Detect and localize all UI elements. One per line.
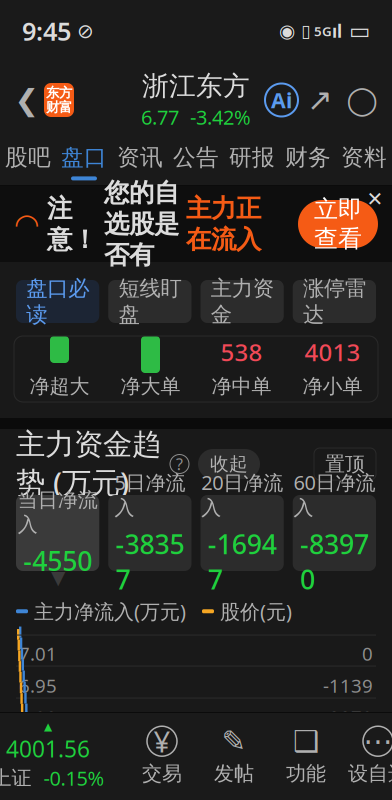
button[interactable]: 涨停雷达 — [293, 280, 376, 323]
staticText: 6.90 — [19, 705, 57, 730]
staticText: 净大单 — [120, 374, 180, 399]
staticText: ▼ — [51, 567, 65, 588]
staticText: -83970 — [300, 526, 369, 597]
staticText: -4550 — [23, 543, 92, 578]
button[interactable]: Back — [10, 76, 44, 124]
staticText: 5日净流入 — [114, 469, 185, 520]
staticText: 交易 — [142, 761, 182, 786]
staticText: ◠ — [14, 207, 40, 241]
staticText: 股价(元) — [220, 598, 292, 625]
staticText: -3418 — [323, 737, 373, 762]
staticText: Ai — [271, 86, 292, 114]
staticText: -16947 — [208, 526, 277, 597]
staticText: 注意！ — [47, 193, 97, 255]
staticText: -38357 — [115, 526, 184, 597]
button[interactable]: 主力资金 — [200, 280, 284, 323]
staticText: 净超大 — [29, 374, 89, 399]
button[interactable]: 置顶 — [314, 448, 376, 480]
button[interactable]: 5日净流入 — [108, 495, 191, 571]
staticText: 0 — [362, 641, 373, 666]
staticText: 立即查看 — [314, 194, 362, 253]
staticText: ? — [176, 453, 183, 475]
staticText: ¥ — [153, 722, 170, 761]
button[interactable]: 股吧 — [0, 138, 56, 186]
staticText: -2279 — [323, 705, 373, 730]
staticText: 主力资金趋势 (万元) — [16, 426, 161, 501]
staticText: 公告 — [173, 144, 219, 171]
staticText: 60日净流入 — [293, 469, 375, 520]
staticText: 当日净流入 — [18, 488, 98, 537]
staticText: ▭ — [342, 18, 370, 44]
button[interactable]: Help — [170, 454, 189, 473]
staticText: ▯ — [295, 21, 311, 41]
staticText: -1139 — [323, 673, 373, 698]
staticText: 浙江东方 — [142, 70, 250, 103]
button[interactable]: 盘口必读 — [16, 280, 99, 323]
button[interactable]: ✎ — [198, 720, 270, 792]
button[interactable]: 60日净流入 — [293, 495, 376, 571]
button[interactable]: ❑ — [270, 720, 342, 792]
staticText: 4013 — [304, 336, 360, 368]
staticText: 上证 — [0, 766, 31, 790]
button[interactable]: 公告 — [168, 138, 224, 186]
staticText: ❑ — [293, 725, 319, 758]
staticText: 538 — [220, 336, 262, 368]
button[interactable]: East Money — [44, 83, 74, 117]
staticText: 资讯 — [117, 144, 163, 171]
staticText: 5G — [311, 22, 332, 40]
staticText: 资料 — [341, 144, 387, 171]
staticText: ⊘ — [71, 20, 94, 42]
staticText: 6.77 — [141, 104, 179, 130]
staticText: ❮ — [14, 83, 39, 117]
button[interactable]: 资讯 — [112, 138, 168, 186]
button[interactable]: 收起 — [198, 449, 260, 479]
button[interactable]: AI assistant — [265, 83, 298, 116]
staticText: 20日净流入 — [201, 469, 283, 520]
staticText: 东方 — [46, 85, 72, 101]
staticText: 主力净流入(万元) — [34, 598, 186, 625]
button[interactable]: Close ad — [362, 186, 388, 212]
staticText: -3.42% — [190, 104, 251, 130]
staticText: 6.95 — [19, 673, 57, 698]
staticText: 主力正在流入 — [186, 193, 261, 255]
staticText: 财富 — [46, 99, 72, 115]
staticText: 7.01 — [19, 641, 57, 666]
staticText: 功能 — [286, 761, 326, 786]
staticText: 盘口必读 — [26, 275, 89, 328]
staticText: ▲ — [44, 721, 52, 733]
staticText: 净小单 — [302, 374, 362, 399]
staticText: -4558 — [323, 769, 373, 794]
button[interactable]: ⋯ — [342, 720, 392, 792]
staticText: 6.79 — [19, 769, 57, 794]
button[interactable]: Share — [298, 78, 342, 122]
staticText: 研报 — [229, 144, 275, 171]
staticText: 盘口 — [61, 144, 107, 171]
staticText: 置顶 — [325, 452, 365, 476]
button[interactable]: 立即查看 — [298, 200, 378, 248]
button[interactable]: 研报 — [224, 138, 280, 186]
button[interactable]: ¥ — [126, 720, 198, 792]
staticText: ✎ — [221, 725, 246, 758]
staticText: 9:45 — [22, 14, 71, 48]
button[interactable]: 20日净流入 — [200, 495, 284, 571]
staticText: ıl — [332, 19, 342, 42]
staticText: ✕ — [366, 188, 383, 210]
staticText: 4001.56 — [6, 734, 90, 764]
button[interactable]: 资料 — [336, 138, 392, 186]
staticText: 净中单 — [211, 374, 271, 399]
button[interactable]: 当日净流入 — [16, 495, 99, 571]
staticText: ↗ — [307, 83, 333, 117]
staticText: 主力资金 — [211, 275, 274, 328]
staticText: 设自选 — [348, 761, 392, 786]
staticText: 涨停雷达 — [303, 275, 366, 328]
staticText: ⋯ — [363, 725, 392, 758]
button[interactable]: Search — [342, 78, 382, 122]
staticText: 发帖 — [214, 761, 254, 786]
staticText: 收起 — [210, 452, 248, 475]
staticText: ◯ — [346, 84, 377, 116]
button[interactable]: ▲ — [0, 720, 118, 792]
staticText: 股吧 — [5, 144, 51, 171]
button[interactable]: 短线盯盘 — [108, 280, 191, 323]
button[interactable]: 财务 — [280, 138, 336, 186]
button[interactable]: 盘口 — [56, 138, 112, 186]
